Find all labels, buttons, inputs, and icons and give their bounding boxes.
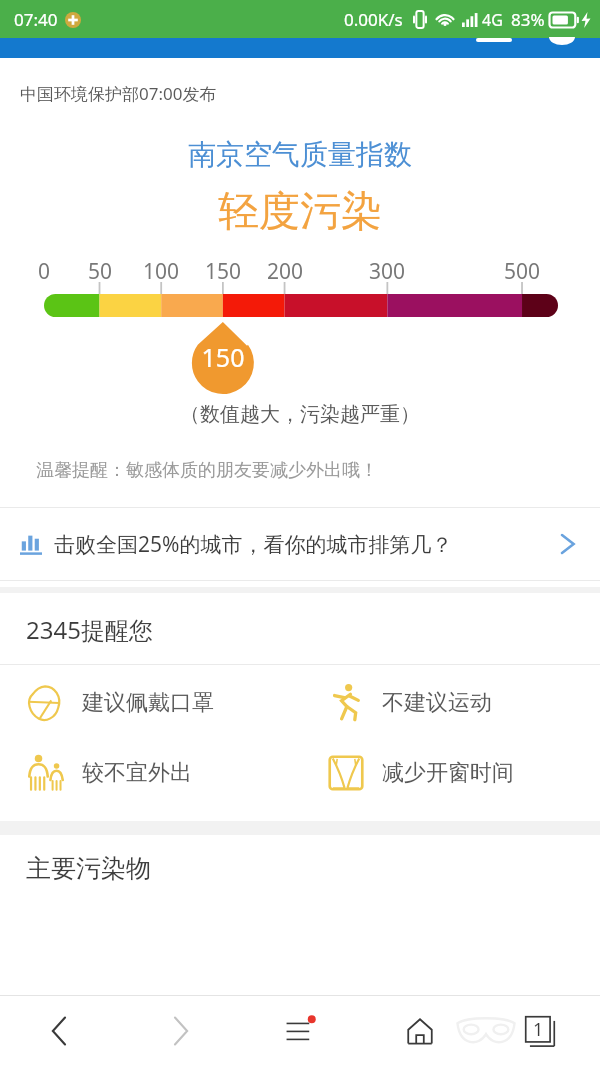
staticText: （数值越大，污染越严重） — [0, 402, 600, 427]
button[interactable]: 较不宜外出 — [0, 751, 300, 795]
staticText: 减少开窗时间 — [382, 759, 514, 787]
button[interactable]: Menu — [476, 38, 512, 42]
button[interactable]: 击败全国25%的城市，看你的城市排第几？ — [0, 508, 600, 580]
button[interactable]: 不建议运动 — [300, 681, 600, 725]
button[interactable]: Account — [549, 38, 575, 45]
staticText: 0 — [24, 257, 64, 286]
staticText: 温馨提醒：敏感体质的朋友要减少外出哦！ — [36, 459, 378, 482]
staticText: 4G — [482, 9, 503, 31]
staticText: 07:40 — [14, 8, 58, 31]
staticText: 主要污染物 — [26, 853, 151, 884]
button[interactable]: Back — [0, 996, 120, 1066]
staticText: 200 — [265, 257, 305, 286]
staticText: 83% — [511, 8, 545, 31]
button[interactable]: Forward — [120, 996, 240, 1066]
button[interactable]: Home — [360, 996, 480, 1066]
button[interactable]: 建议佩戴口罩 — [0, 681, 300, 725]
staticText: 500 — [502, 257, 542, 286]
staticText: 150 — [203, 257, 243, 286]
button[interactable]: Menu — [240, 996, 360, 1066]
staticText: 100 — [141, 257, 181, 286]
staticText: 较不宜外出 — [82, 759, 192, 787]
staticText: 中国环境保护部07:00发布 — [20, 82, 217, 105]
staticText: 2345提醒您 — [26, 613, 153, 646]
staticText: 南京空气质量指数 — [0, 137, 600, 172]
staticText: 50 — [80, 257, 120, 286]
staticText: 轻度污染 — [0, 186, 600, 238]
staticText: 建议佩戴口罩 — [82, 689, 214, 717]
staticText: 300 — [367, 257, 407, 286]
button[interactable]: Tabs — [480, 996, 600, 1066]
staticText: 150 — [191, 340, 255, 374]
staticText: 击败全国25%的城市，看你的城市排第几？ — [54, 530, 558, 559]
staticText: 不建议运动 — [382, 689, 492, 717]
button[interactable]: 减少开窗时间 — [300, 751, 600, 795]
staticText: 0.00K/s — [344, 8, 403, 31]
staticText: 1 — [533, 1017, 544, 1042]
